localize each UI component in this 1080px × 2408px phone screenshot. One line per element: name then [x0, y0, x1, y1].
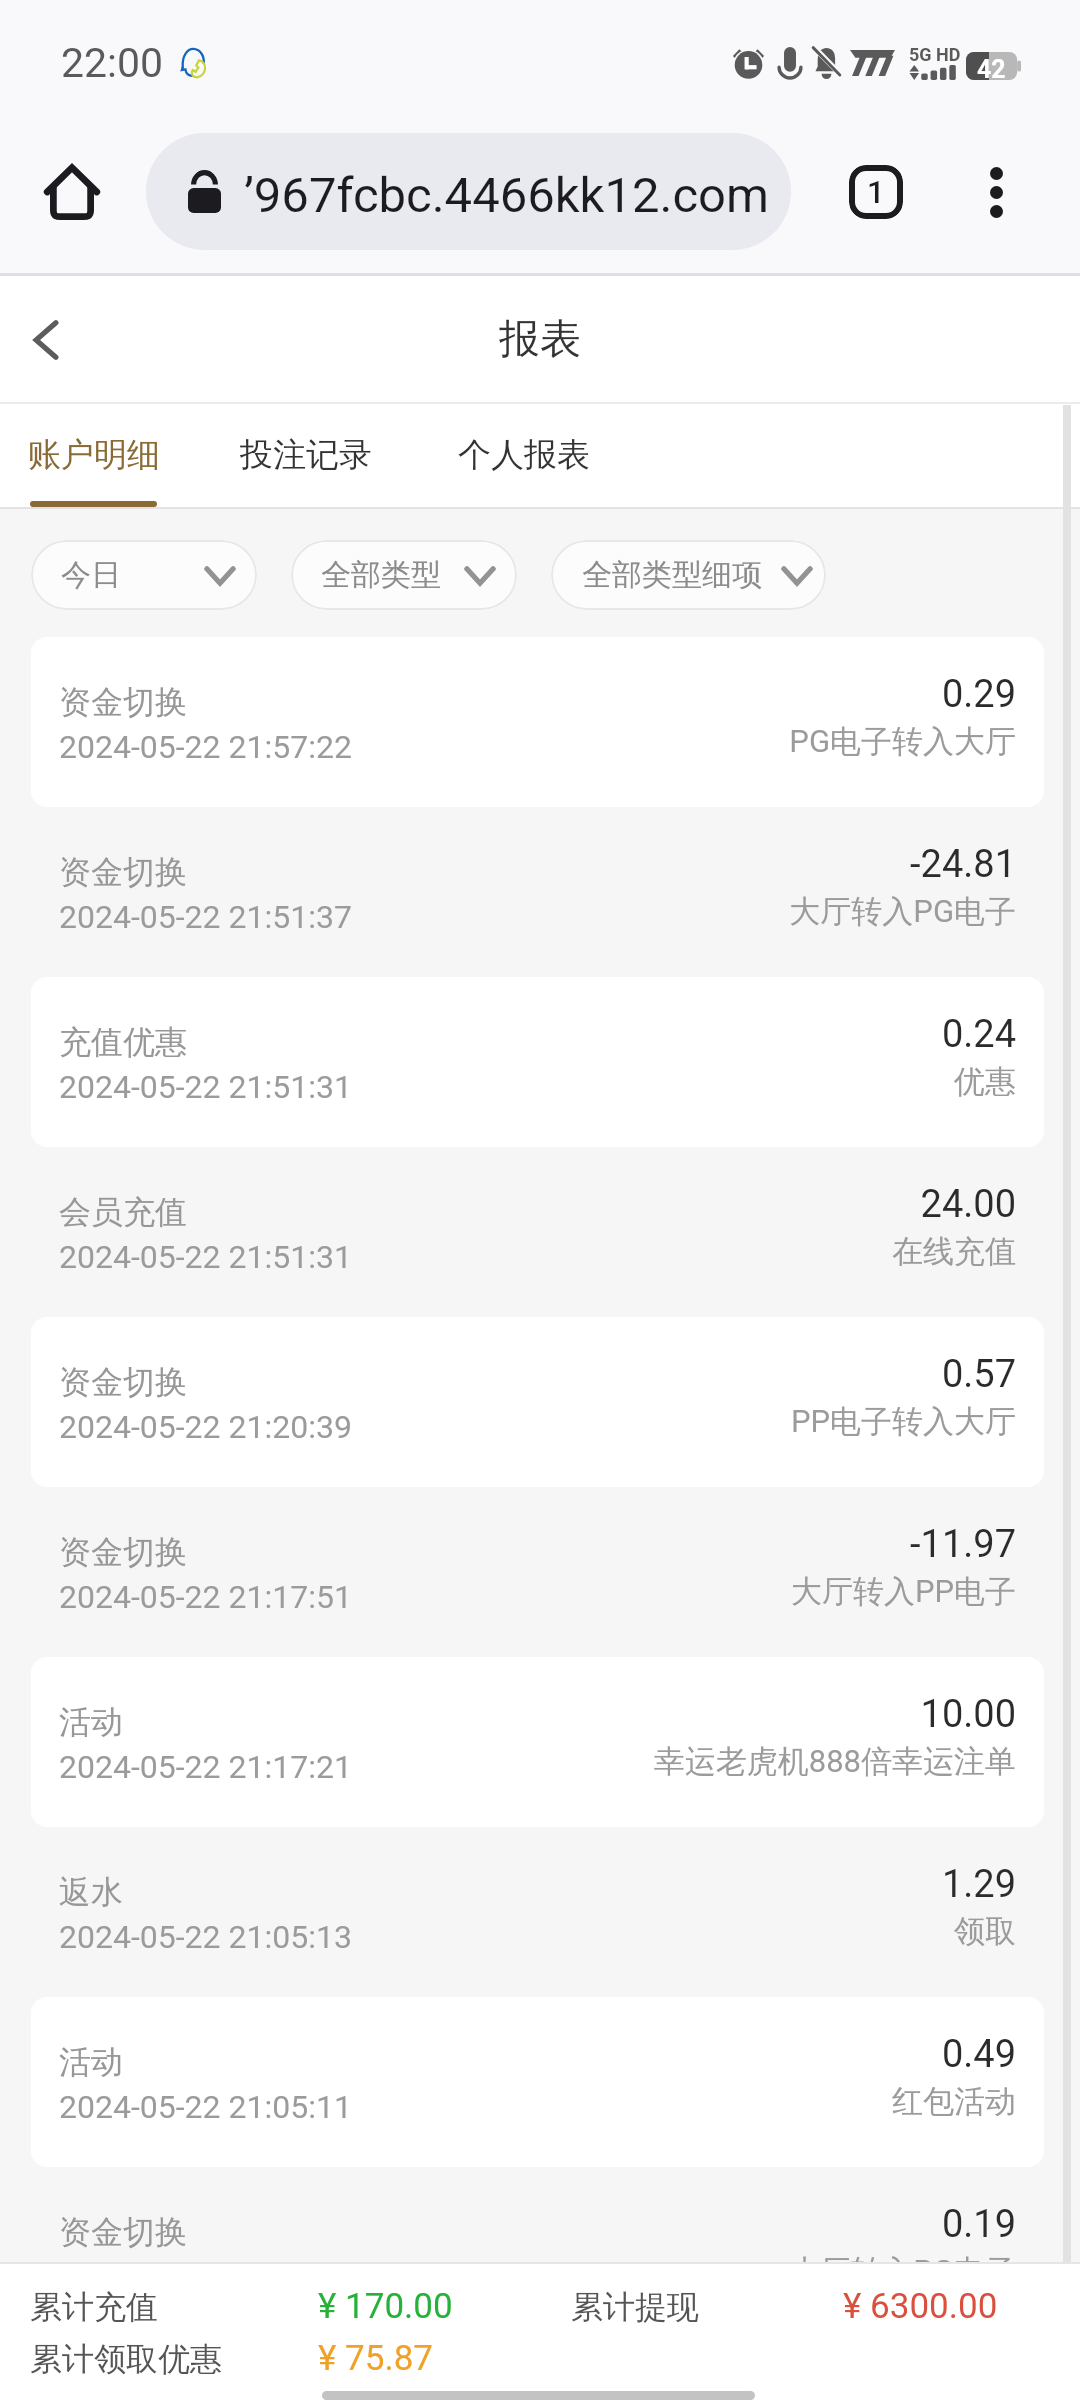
staticText: 投注记录: [240, 434, 372, 476]
button[interactable]: 返水: [31, 1827, 1044, 1997]
staticText: 42: [977, 55, 1006, 83]
staticText: 资金切换: [59, 2212, 187, 2252]
staticText: 资金切换: [59, 682, 187, 722]
staticText: PP电子转入大厅: [790, 1402, 1016, 1441]
button[interactable]: 全部类型: [291, 540, 517, 610]
staticText: 1: [867, 174, 885, 210]
staticText: 0.49: [941, 2032, 1016, 2077]
button[interactable]: 投注记录: [223, 404, 389, 509]
staticText: -24.81: [910, 842, 1016, 887]
button[interactable]: 资金切换: [31, 1317, 1044, 1487]
staticText: 大厅转入PG电子: [789, 2252, 1016, 2291]
staticText: ¥ 170.00: [318, 2286, 453, 2327]
staticText: 在线充值: [892, 1232, 1016, 1271]
staticText: 优惠: [954, 1062, 1016, 1101]
button[interactable]: 账户明细: [11, 404, 177, 509]
staticText: 2024-05-22 21:51:37: [59, 898, 352, 936]
button[interactable]: Back: [8, 302, 84, 378]
staticText: 2024-05-22 21:17:21: [59, 1748, 352, 1786]
staticText: 2024-05-22 21:51:31: [59, 1238, 352, 1276]
staticText: 0.57: [941, 1352, 1016, 1397]
staticText: 全部类型细项: [582, 556, 762, 594]
button[interactable]: 资金切换: [31, 2167, 1044, 2262]
button[interactable]: More options: [952, 148, 1040, 236]
button[interactable]: Home: [28, 148, 116, 236]
staticText: 5G: [909, 44, 932, 65]
button[interactable]: 今日: [31, 540, 257, 610]
button[interactable]: 资金切换: [31, 1487, 1044, 1657]
staticText: 资金切换: [59, 1532, 187, 1572]
staticText: 累计领取优惠: [30, 2339, 222, 2379]
button[interactable]: 全部类型细项: [551, 540, 826, 610]
staticText: ¥ 6300.00: [843, 2286, 998, 2327]
button[interactable]: 资金切换: [31, 807, 1044, 977]
button[interactable]: 个人报表: [441, 404, 607, 509]
button[interactable]: 资金切换: [31, 637, 1044, 807]
staticText: 24.00: [920, 1182, 1016, 1227]
staticText: 1.29: [941, 1862, 1016, 1907]
staticText: 累计提现: [571, 2287, 699, 2327]
staticText: -11.97: [910, 1522, 1016, 1567]
staticText: 今日: [61, 556, 121, 594]
staticText: ’967fcbc.4466kk12.com: [244, 167, 770, 224]
staticText: 2024-05-22 21:17:51: [59, 1578, 352, 1616]
staticText: 领取: [954, 1912, 1016, 1951]
staticText: 账户明细: [28, 434, 160, 476]
staticText: 幸运老虎机888倍幸运注单: [653, 1742, 1016, 1781]
staticText: 报表: [499, 314, 581, 366]
staticText: 2024-05-22 21:05:13: [59, 1918, 352, 1956]
staticText: 2024-05-22 21:04:55: [59, 2258, 352, 2296]
button[interactable]: ’967fcbc.4466kk12.com: [146, 133, 791, 250]
button[interactable]: 活动: [31, 1657, 1044, 1827]
staticText: 大厅转入PG电子: [789, 892, 1016, 931]
staticText: 2024-05-22 21:05:11: [59, 2088, 352, 2126]
staticText: ¥ 75.87: [318, 2338, 433, 2379]
staticText: 资金切换: [59, 1362, 187, 1402]
staticText: 充值优惠: [59, 1022, 187, 1062]
staticText: 10.00: [920, 1692, 1016, 1737]
staticText: 返水: [59, 1872, 123, 1912]
staticText: 全部类型: [321, 556, 441, 594]
staticText: 资金切换: [59, 852, 187, 892]
staticText: 22:00: [61, 39, 164, 87]
staticText: 会员充值: [59, 1192, 187, 1232]
staticText: 2024-05-22 21:57:22: [59, 728, 352, 766]
staticText: 0.29: [941, 672, 1016, 717]
button[interactable]: Tabs: [832, 148, 920, 236]
staticText: 大厅转入PP电子: [790, 1572, 1016, 1611]
staticText: 活动: [59, 2042, 123, 2082]
staticText: PG电子转入大厅: [789, 722, 1016, 761]
staticText: 0.19: [941, 2202, 1016, 2247]
staticText: 个人报表: [458, 434, 590, 476]
staticText: 2024-05-22 21:51:31: [59, 1068, 352, 1106]
staticText: 活动: [59, 1702, 123, 1742]
staticText: 累计充值: [30, 2287, 158, 2327]
button[interactable]: 会员充值: [31, 1147, 1044, 1317]
staticText: 红包活动: [892, 2082, 1016, 2121]
staticText: 0.24: [941, 1012, 1016, 1057]
button[interactable]: 充值优惠: [31, 977, 1044, 1147]
staticText: HD: [936, 44, 961, 65]
staticText: 2024-05-22 21:20:39: [59, 1408, 352, 1446]
button[interactable]: 活动: [31, 1997, 1044, 2167]
